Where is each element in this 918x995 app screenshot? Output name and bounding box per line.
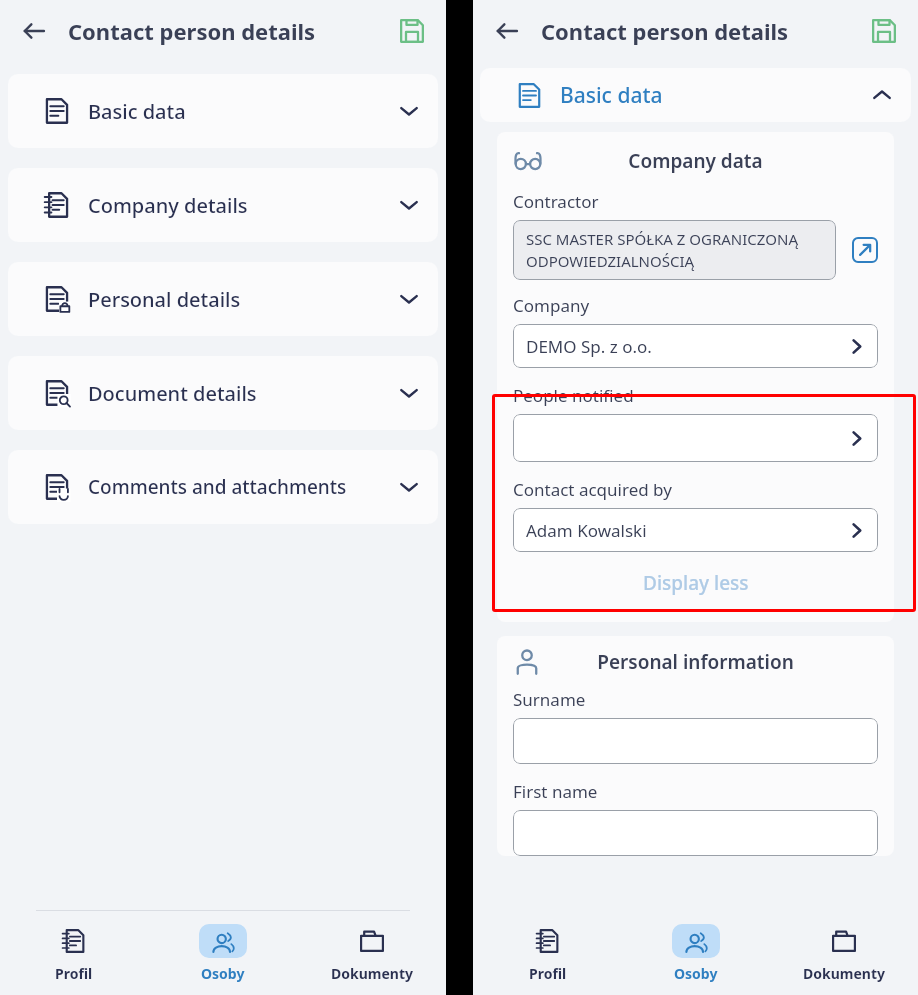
staticText: Contact person details <box>541 16 789 46</box>
button[interactable] <box>513 810 878 856</box>
staticText: Personal details <box>88 286 241 313</box>
button[interactable]: DEMO Sp. z o.o. <box>513 324 878 368</box>
button[interactable]: Basic data <box>480 68 911 122</box>
button[interactable]: Save <box>864 11 904 51</box>
staticText: Contact person details <box>68 16 316 46</box>
button[interactable]: Osoby <box>148 911 297 995</box>
staticText: Contractor <box>513 190 599 213</box>
staticText: DEMO Sp. z o.o. <box>526 335 652 358</box>
button[interactable]: SSC MASTER SPÓŁKA Z OGRANICZONĄ ODPOWIED… <box>513 220 836 280</box>
staticText: Adam Kowalski <box>526 519 647 542</box>
staticText: Comments and attachments <box>88 474 347 500</box>
button[interactable]: Dokumenty <box>770 911 918 995</box>
button[interactable]: Personal details <box>8 262 438 336</box>
staticText: People notified <box>513 384 634 407</box>
button[interactable]: Document details <box>8 356 438 430</box>
button[interactable]: Back <box>14 11 54 51</box>
staticText: Basic data <box>88 98 186 125</box>
staticText: Company details <box>88 192 248 219</box>
staticText: Profil <box>529 964 567 983</box>
staticText: Company <box>513 294 590 317</box>
button[interactable]: Back <box>487 11 527 51</box>
staticText: Contact acquired by <box>513 478 672 501</box>
button[interactable]: Adam Kowalski <box>513 508 878 552</box>
staticText: Document details <box>88 380 257 407</box>
staticText: Company data <box>543 148 848 174</box>
staticText: Dokumenty <box>803 964 885 983</box>
button[interactable]: Osoby <box>622 911 770 995</box>
staticText: Dokumenty <box>331 964 413 983</box>
staticText: SSC MASTER SPÓŁKA Z OGRANICZONĄ ODPOWIED… <box>526 229 823 272</box>
button[interactable]: Display less <box>513 570 878 596</box>
button[interactable]: Save <box>392 11 432 51</box>
staticText: Profil <box>55 964 93 983</box>
staticText: Display less <box>643 570 749 596</box>
staticText: Personal information <box>541 649 850 675</box>
button[interactable]: Comments and attachments <box>8 450 438 524</box>
button[interactable]: Dokumenty <box>297 911 446 995</box>
staticText: Surname <box>513 688 586 711</box>
button[interactable]: Company details <box>8 168 438 242</box>
staticText: First name <box>513 780 598 803</box>
button[interactable]: Basic data <box>8 74 438 148</box>
button[interactable] <box>513 414 878 462</box>
button[interactable] <box>513 718 878 764</box>
staticText: Basic data <box>560 81 663 110</box>
staticText: Osoby <box>201 964 245 983</box>
staticText: Osoby <box>674 964 718 983</box>
button[interactable]: Open contractor <box>852 237 878 263</box>
button[interactable]: Profil <box>0 911 148 995</box>
button[interactable]: Profil <box>473 911 622 995</box>
